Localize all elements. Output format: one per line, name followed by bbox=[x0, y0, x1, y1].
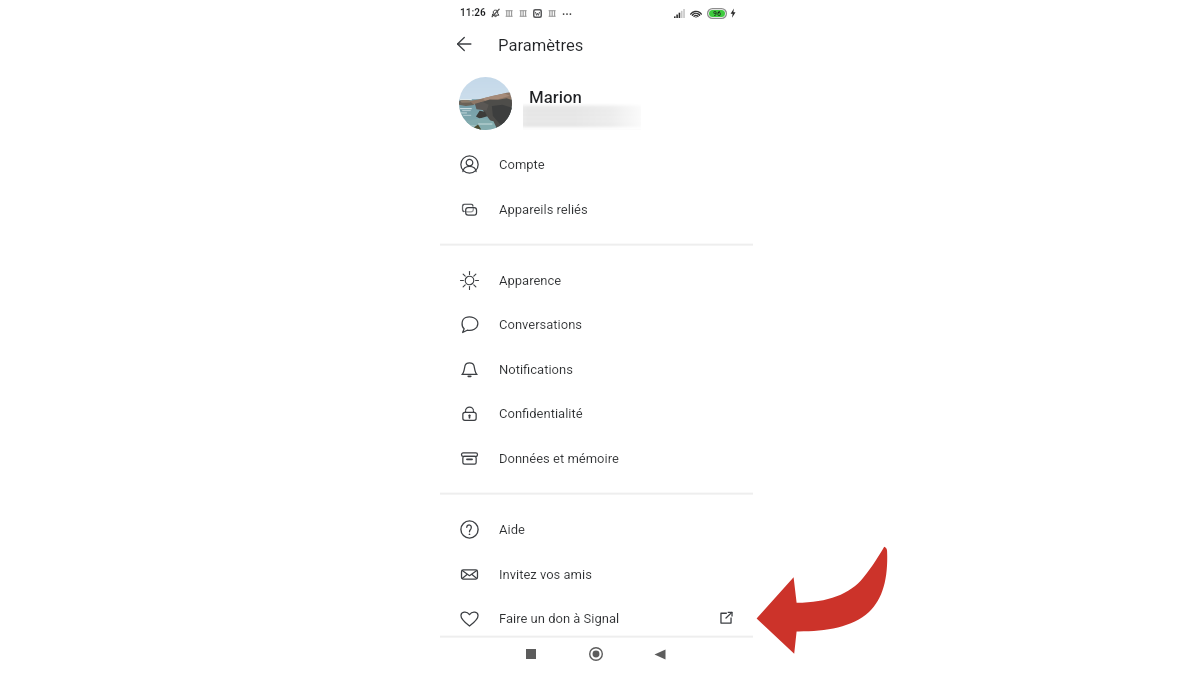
button[interactable]: Confidentialité bbox=[440, 391, 760, 435]
button[interactable]: Appareils reliés bbox=[440, 187, 760, 231]
button[interactable]: Faire un don à Signal bbox=[440, 596, 760, 640]
staticText: Apparence bbox=[499, 273, 562, 288]
button[interactable]: Aide bbox=[440, 507, 760, 551]
button[interactable]: Compte bbox=[440, 142, 760, 186]
staticText: Données et mémoire bbox=[499, 451, 619, 466]
staticText: 11:26 bbox=[460, 7, 486, 19]
button[interactable]: Conversations bbox=[440, 302, 760, 346]
button[interactable]: Apparence bbox=[440, 258, 760, 302]
staticText: Appareils reliés bbox=[499, 202, 588, 217]
staticText: Conversations bbox=[499, 317, 583, 332]
staticText: 96 bbox=[713, 10, 722, 18]
button[interactable]: Ouvrir dans le navigateur bbox=[713, 605, 739, 631]
button[interactable]: Données et mémoire bbox=[440, 436, 760, 480]
staticText: Paramètres bbox=[498, 36, 584, 55]
staticText: Faire un don à Signal bbox=[499, 611, 620, 626]
button[interactable]: Retour bbox=[642, 636, 678, 672]
staticText: Notifications bbox=[499, 362, 573, 377]
button[interactable]: Accueil bbox=[578, 636, 614, 672]
staticText: Aide bbox=[499, 522, 525, 537]
staticText: Invitez vos amis bbox=[499, 567, 592, 582]
button[interactable]: Notifications bbox=[440, 347, 760, 391]
button[interactable]: Invitez vos amis bbox=[440, 552, 760, 596]
button[interactable]: Marion bbox=[440, 74, 760, 132]
staticText: Compte bbox=[499, 157, 545, 172]
staticText: Marion bbox=[529, 87, 582, 107]
button[interactable]: Aperçu des applications bbox=[513, 636, 549, 672]
staticText: Confidentialité bbox=[499, 406, 583, 421]
button[interactable]: Retour bbox=[446, 26, 482, 62]
